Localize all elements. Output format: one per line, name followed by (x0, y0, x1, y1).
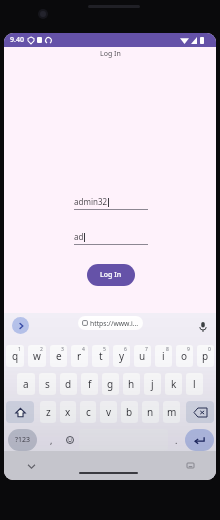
button[interactable]: 6 (113, 345, 130, 367)
button[interactable]: . (167, 429, 185, 451)
button[interactable]: 9 (176, 345, 193, 367)
button[interactable]: 4 (71, 345, 88, 367)
staticText: https://www.i… (90, 319, 139, 328)
button[interactable]: v (100, 401, 117, 423)
staticText: 8 (166, 346, 169, 353)
button[interactable]: f (81, 373, 98, 395)
button[interactable]: c (80, 401, 96, 423)
staticText: 9 (187, 346, 190, 353)
staticText: u (139, 349, 146, 363)
staticText: . (175, 434, 178, 446)
button[interactable]: Hide keyboard (24, 459, 38, 473)
staticText: i (162, 349, 165, 363)
button[interactable]: Switch keyboard (183, 458, 197, 472)
staticText: q (12, 349, 19, 363)
staticText: w (33, 349, 41, 363)
staticText: 2 (40, 346, 43, 353)
button[interactable]: 2 (28, 345, 46, 367)
staticText: l (193, 377, 196, 391)
staticText: 7 (145, 346, 148, 353)
staticText: admin32 (74, 196, 108, 207)
button[interactable]: d (60, 373, 77, 395)
staticText: r (77, 349, 82, 363)
staticText: 5 (103, 346, 106, 353)
staticText: d (65, 377, 72, 391)
staticText: x (65, 405, 71, 419)
staticText: e (56, 349, 62, 363)
button[interactable]: x (60, 401, 76, 423)
button[interactable]: s (39, 373, 56, 395)
button[interactable]: 8 (155, 345, 172, 367)
button[interactable]: Emoji (61, 429, 79, 451)
button[interactable]: ?123 (8, 429, 37, 451)
staticText: , (50, 434, 53, 446)
staticText: s (45, 377, 50, 391)
button[interactable]: m (163, 401, 180, 423)
staticText: m (167, 405, 177, 419)
staticText: g (107, 377, 114, 391)
button[interactable]: Shift (6, 401, 34, 423)
staticText: v (106, 405, 112, 419)
button[interactable]: j (144, 373, 161, 395)
staticText: t (99, 349, 103, 363)
button[interactable]: 5 (92, 345, 109, 367)
button[interactable]: Next suggestion (12, 317, 29, 334)
staticText: o (181, 349, 188, 363)
staticText: k (171, 377, 177, 391)
button[interactable]: 0 (197, 345, 214, 367)
staticText: f (88, 377, 92, 391)
button[interactable]: Enter (185, 429, 214, 451)
staticText: p (202, 349, 209, 363)
button[interactable]: b (121, 401, 138, 423)
staticText: 4 (82, 346, 85, 353)
button[interactable]: https://www.i… (82, 316, 139, 330)
button[interactable]: k (165, 373, 182, 395)
button[interactable]: g (102, 373, 119, 395)
staticText: Log In (100, 49, 121, 59)
button[interactable]: a (17, 373, 35, 395)
button[interactable]: 3 (50, 345, 67, 367)
staticText: j (151, 377, 154, 391)
staticText: a (23, 377, 29, 391)
button[interactable]: Voice input (194, 318, 212, 336)
button[interactable]: Log In (87, 264, 135, 286)
staticText: y (119, 349, 125, 363)
staticText: c (86, 405, 91, 419)
button[interactable]: l (186, 373, 203, 395)
staticText: ad (74, 231, 84, 242)
button[interactable]: n (142, 401, 159, 423)
staticText: z (46, 405, 51, 419)
button[interactable]: 7 (134, 345, 151, 367)
button[interactable]: admin32 (74, 196, 148, 210)
button[interactable]: , (42, 429, 60, 451)
staticText: 9.40 (10, 35, 24, 45)
staticText: h (128, 377, 135, 391)
staticText: 0 (208, 346, 211, 353)
staticText: b (126, 405, 133, 419)
button[interactable]: 1 (6, 345, 24, 367)
staticText: 3 (61, 346, 64, 353)
button[interactable]: h (123, 373, 140, 395)
staticText: n (147, 405, 154, 419)
staticText: Log In (100, 270, 122, 280)
button[interactable]: ad (74, 231, 148, 245)
button[interactable]: Backspace (186, 401, 214, 423)
button[interactable]: z (40, 401, 56, 423)
staticText: ?123 (15, 435, 31, 445)
staticText: 6 (124, 346, 127, 353)
staticText: 1 (18, 346, 21, 353)
